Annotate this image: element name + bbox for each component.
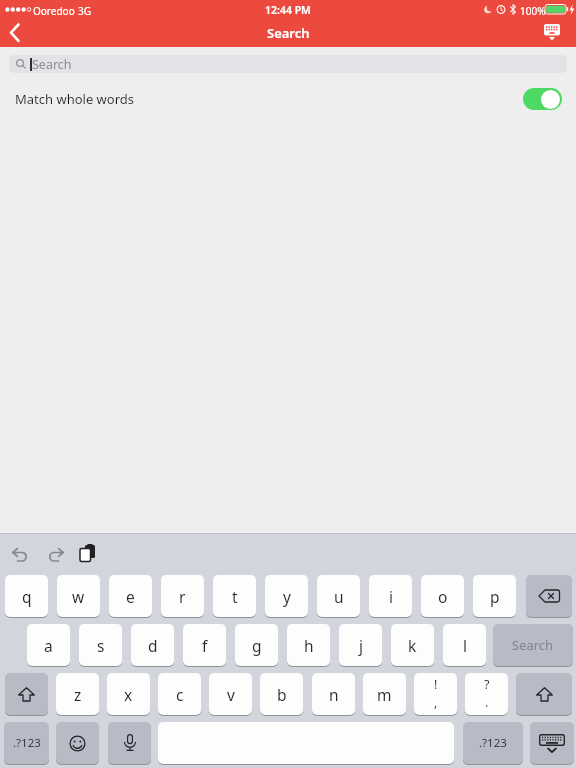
- staticText: .?123: [479, 735, 507, 751]
- staticText: o: [438, 586, 448, 607]
- button[interactable]: k: [391, 624, 434, 666]
- staticText: m: [377, 684, 392, 705]
- button[interactable]: l: [443, 624, 486, 666]
- staticText: 3G: [78, 4, 91, 18]
- staticText: ?: [484, 676, 490, 693]
- staticText: Search: [32, 56, 72, 73]
- staticText: c: [176, 684, 184, 705]
- staticText: x: [124, 684, 133, 705]
- staticText: n: [329, 684, 339, 705]
- button[interactable]: r: [161, 575, 204, 617]
- button[interactable]: y: [265, 575, 308, 617]
- staticText: q: [22, 586, 32, 607]
- button[interactable]: d: [131, 624, 174, 666]
- button[interactable]: c: [158, 673, 201, 715]
- button[interactable]: x: [107, 673, 150, 715]
- staticText: j: [359, 635, 363, 656]
- button[interactable]: Search: [9, 55, 567, 73]
- staticText: z: [74, 684, 82, 705]
- staticText: y: [283, 586, 291, 607]
- staticText: Search: [512, 636, 554, 654]
- button[interactable]: p: [473, 575, 516, 617]
- button[interactable]: [523, 88, 562, 110]
- staticText: g: [252, 635, 262, 656]
- button[interactable]: [8, 546, 34, 568]
- button[interactable]: [0, 19, 40, 47]
- staticText: k: [408, 635, 417, 656]
- button[interactable]: .?123: [4, 722, 49, 764]
- staticText: Match whole words: [15, 90, 135, 108]
- button[interactable]: h: [287, 624, 330, 666]
- button[interactable]: Search: [493, 624, 573, 666]
- staticText: .: [485, 694, 489, 711]
- button[interactable]: z: [56, 673, 99, 715]
- staticText: .?123: [13, 735, 41, 751]
- button[interactable]: [108, 722, 151, 764]
- button[interactable]: .?123: [463, 722, 523, 764]
- staticText: b: [277, 684, 287, 705]
- staticText: l: [463, 635, 467, 656]
- button[interactable]: b: [260, 673, 303, 715]
- staticText: 12:44 PM: [265, 3, 311, 17]
- button[interactable]: [5, 673, 48, 715]
- button[interactable]: [526, 575, 572, 617]
- button[interactable]: m: [363, 673, 406, 715]
- button[interactable]: [536, 20, 568, 46]
- staticText: e: [126, 586, 135, 607]
- button[interactable]: o: [421, 575, 464, 617]
- staticText: p: [490, 586, 500, 607]
- button[interactable]: [516, 673, 572, 715]
- button[interactable]: f: [183, 624, 226, 666]
- staticText: f: [202, 635, 208, 656]
- staticText: h: [304, 635, 314, 656]
- button[interactable]: !: [414, 673, 457, 715]
- staticText: t: [232, 586, 238, 607]
- button[interactable]: [530, 722, 574, 764]
- staticText: v: [227, 684, 235, 705]
- staticText: i: [389, 586, 393, 607]
- button[interactable]: g: [235, 624, 278, 666]
- button[interactable]: i: [369, 575, 412, 617]
- staticText: Ooredoo: [33, 4, 75, 18]
- button[interactable]: a: [27, 624, 70, 666]
- staticText: d: [148, 635, 158, 656]
- staticText: 100%: [520, 4, 546, 18]
- button[interactable]: n: [312, 673, 355, 715]
- staticText: r: [179, 586, 186, 607]
- button[interactable]: v: [209, 673, 252, 715]
- staticText: Search: [267, 24, 310, 42]
- button[interactable]: u: [317, 575, 360, 617]
- button[interactable]: e: [109, 575, 152, 617]
- staticText: u: [334, 586, 344, 607]
- staticText: ,: [434, 694, 438, 711]
- button[interactable]: [56, 722, 99, 764]
- button[interactable]: t: [213, 575, 256, 617]
- button[interactable]: j: [339, 624, 382, 666]
- staticText: w: [72, 586, 85, 607]
- button[interactable]: [78, 544, 102, 568]
- button[interactable]: s: [79, 624, 122, 666]
- button[interactable]: w: [57, 575, 100, 617]
- staticText: a: [44, 635, 53, 656]
- button[interactable]: ?: [465, 673, 508, 715]
- button[interactable]: [42, 546, 68, 568]
- button[interactable]: q: [5, 575, 48, 617]
- staticText: !: [434, 676, 438, 693]
- staticText: s: [97, 635, 105, 656]
